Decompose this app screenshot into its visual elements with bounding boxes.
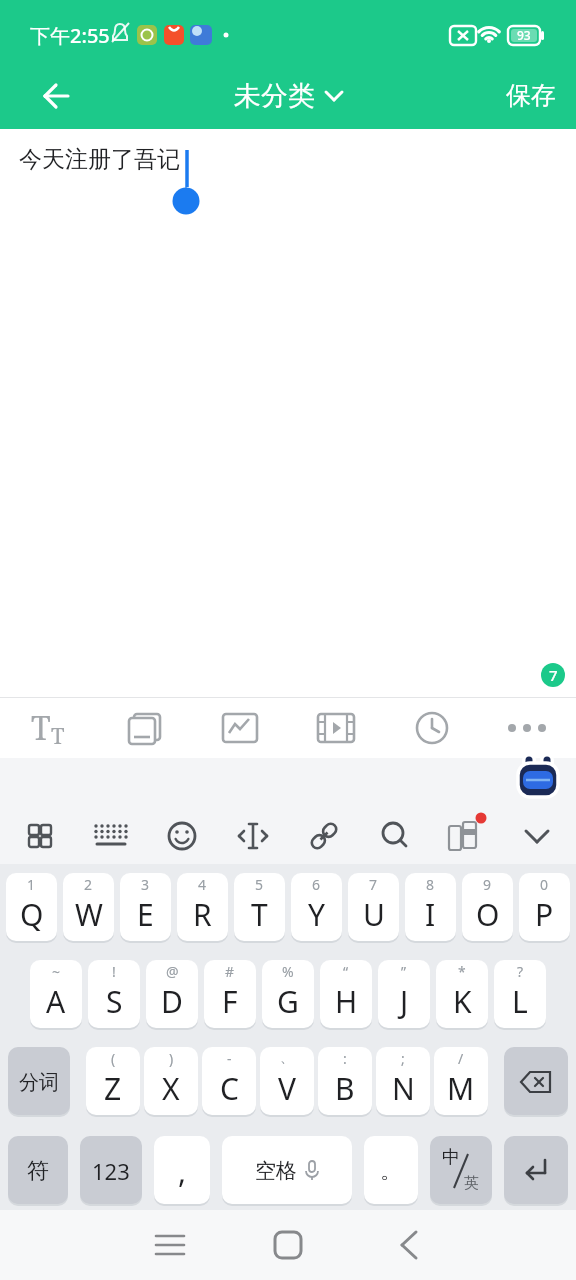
button[interactable]: 空格	[222, 1136, 352, 1206]
staticText: A	[46, 981, 66, 1022]
button[interactable]: ~	[30, 960, 82, 1030]
staticText: Y	[308, 894, 325, 935]
button[interactable]: 7	[348, 873, 399, 943]
staticText: G	[277, 981, 299, 1022]
button[interactable]: 0	[519, 873, 570, 943]
button[interactable]: 6	[291, 873, 342, 943]
staticText: S	[106, 981, 123, 1022]
button[interactable]: !	[88, 960, 140, 1030]
button[interactable]	[0, 1210, 192, 1280]
button[interactable]: 。	[364, 1136, 418, 1206]
button[interactable]	[504, 1047, 568, 1117]
staticText: 8	[426, 875, 435, 894]
staticText: #	[225, 962, 235, 981]
staticText: J	[400, 981, 409, 1022]
staticText: )	[169, 1049, 174, 1068]
staticText: T	[251, 894, 268, 935]
staticText: Q	[20, 894, 44, 935]
button[interactable]: %	[262, 960, 314, 1030]
staticText: 、	[280, 1049, 294, 1067]
staticText: /	[458, 1049, 464, 1068]
button[interactable]: 符	[8, 1136, 68, 1206]
button[interactable]: 8	[405, 873, 456, 943]
button[interactable]: “	[320, 960, 372, 1030]
staticText: 123	[92, 1156, 130, 1186]
staticText: ;	[401, 1049, 405, 1068]
staticText: K	[453, 981, 472, 1022]
staticText: 中	[442, 1146, 460, 1169]
staticText: 。	[380, 1157, 402, 1185]
button[interactable]: :	[318, 1047, 372, 1117]
staticText: 符	[27, 1157, 49, 1185]
staticText: 英	[464, 1174, 479, 1193]
button[interactable]: 保存	[506, 80, 556, 111]
staticText: (	[111, 1049, 116, 1068]
button[interactable]	[384, 1210, 576, 1280]
button[interactable]: 1	[6, 873, 57, 943]
button[interactable]: ?	[494, 960, 546, 1030]
staticText: 0	[540, 875, 549, 894]
button[interactable]: (	[86, 1047, 140, 1117]
button[interactable]: @	[146, 960, 198, 1030]
button[interactable]: T	[0, 698, 96, 758]
staticText: 2	[84, 875, 93, 894]
button[interactable]	[192, 1210, 384, 1280]
button[interactable]: *	[436, 960, 488, 1030]
staticText: !	[112, 962, 116, 981]
button[interactable]: 5	[234, 873, 285, 943]
staticText: *	[458, 962, 466, 981]
button[interactable]: ;	[376, 1047, 430, 1117]
button[interactable]: 9	[462, 873, 513, 943]
staticText: Z	[104, 1068, 122, 1109]
button[interactable]: 、	[260, 1047, 314, 1117]
staticText: 6	[312, 875, 321, 894]
staticText: ,	[178, 1151, 187, 1192]
button[interactable]	[480, 698, 576, 758]
staticText: 分词	[19, 1070, 59, 1095]
staticText: 空格	[255, 1158, 297, 1184]
button[interactable]: 未分类	[234, 79, 343, 113]
button[interactable]	[192, 698, 288, 758]
button[interactable]	[28, 62, 84, 129]
button[interactable]: #	[204, 960, 256, 1030]
button[interactable]: 2	[63, 873, 114, 943]
staticText: O	[476, 894, 500, 935]
staticText: -	[227, 1049, 232, 1068]
button[interactable]: /	[434, 1047, 488, 1117]
staticText: E	[137, 894, 154, 935]
staticText: 7	[549, 665, 558, 685]
staticText: 下午2:55	[30, 22, 110, 49]
button[interactable]	[96, 698, 192, 758]
staticText: %	[282, 962, 294, 981]
staticText: T	[31, 706, 51, 750]
button[interactable]	[504, 1136, 568, 1206]
staticText: 未分类	[234, 79, 315, 113]
staticText: X	[162, 1068, 180, 1109]
staticText: “	[343, 962, 349, 981]
staticText: B	[335, 1068, 355, 1109]
staticText: ~	[52, 962, 61, 981]
staticText: :	[343, 1049, 347, 1068]
button[interactable]: 4	[177, 873, 228, 943]
staticText: M	[447, 1068, 475, 1109]
staticText: C	[220, 1068, 239, 1109]
staticText: W	[75, 894, 103, 935]
staticText: ”	[401, 962, 407, 981]
button[interactable]: 123	[80, 1136, 142, 1206]
button[interactable]: ,	[154, 1136, 210, 1206]
button[interactable]	[384, 698, 480, 758]
staticText: 9	[483, 875, 492, 894]
button[interactable]: )	[144, 1047, 198, 1117]
staticText: 4	[198, 875, 207, 894]
staticText: 7	[369, 875, 378, 894]
button[interactable]: -	[202, 1047, 256, 1117]
staticText: 1	[27, 875, 36, 894]
button[interactable]: 3	[120, 873, 171, 943]
staticText: N	[392, 1068, 415, 1109]
staticText: T	[51, 720, 65, 750]
button[interactable]: 分词	[8, 1047, 70, 1117]
button[interactable]: ”	[378, 960, 430, 1030]
button[interactable]: 中	[430, 1136, 492, 1206]
staticText: 5	[255, 875, 264, 894]
button[interactable]	[288, 698, 384, 758]
